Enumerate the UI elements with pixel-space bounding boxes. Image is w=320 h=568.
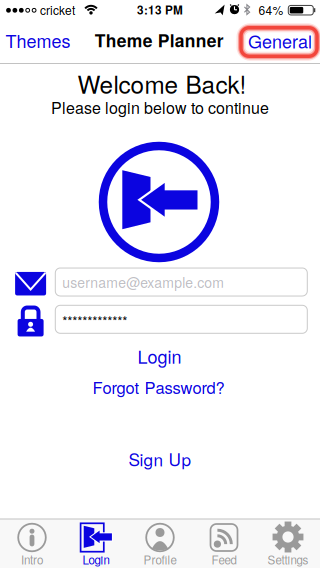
staticText: Sign Up	[128, 446, 191, 471]
button[interactable]: Username or email	[55, 268, 307, 296]
staticText: Welcome Back!	[77, 66, 246, 101]
button[interactable]: Feed	[192, 519, 256, 568]
staticText: General	[248, 28, 312, 54]
staticText: Login	[82, 551, 109, 568]
staticText: username@example.com	[62, 272, 224, 292]
staticText: cricket	[40, 1, 75, 18]
staticText: *************	[62, 311, 127, 330]
button[interactable]: Intro	[0, 519, 64, 568]
staticText: Please login below to continue	[51, 96, 269, 119]
staticText: Feed	[211, 551, 236, 568]
button[interactable]: Themes	[5, 27, 70, 53]
button[interactable]: Sign Up	[128, 446, 191, 471]
button[interactable]: Forgot Password?	[92, 375, 224, 399]
staticText: Themes	[5, 27, 70, 53]
staticText: Forgot Password?	[92, 375, 224, 399]
button[interactable]: General	[248, 28, 312, 54]
staticText: Profile	[143, 551, 176, 568]
button[interactable]: Login	[64, 519, 128, 568]
button[interactable]: Login	[137, 343, 181, 369]
staticText: Settings	[267, 551, 308, 568]
button[interactable]: Password	[55, 305, 307, 333]
button[interactable]: Settings	[256, 519, 320, 568]
staticText: Login	[137, 343, 181, 369]
staticText: 3:13 PM	[137, 1, 183, 18]
staticText: Intro	[21, 551, 43, 568]
staticText: Theme Planner	[95, 28, 224, 53]
staticText: 64%	[258, 1, 283, 18]
button[interactable]: Profile	[128, 519, 192, 568]
